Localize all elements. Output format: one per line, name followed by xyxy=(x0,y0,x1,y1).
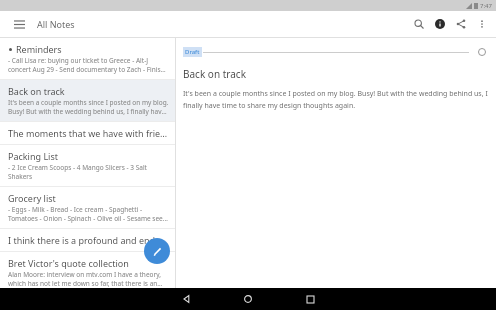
button[interactable]: Back on track xyxy=(0,80,175,121)
button[interactable]: Reminders xyxy=(0,38,175,79)
button[interactable]: New note xyxy=(144,238,170,264)
button[interactable]: Note info xyxy=(429,11,450,37)
staticText: The moments that we have with friends an… xyxy=(8,127,169,139)
staticText: Back on track xyxy=(8,85,65,97)
staticText: Draft xyxy=(185,48,200,56)
button[interactable]: Open navigation menu xyxy=(9,14,29,34)
staticText: Reminders xyxy=(16,43,62,55)
staticText: - 2 Ice Cream Scoops - 4 Mango Slicers -… xyxy=(8,163,169,181)
button[interactable]: I think there is a profound and enduring… xyxy=(0,229,175,251)
button[interactable]: Draft xyxy=(185,48,200,56)
staticText: I think there is a profound and enduring… xyxy=(8,234,169,246)
button[interactable]: Note color xyxy=(475,45,489,59)
button[interactable]: Search xyxy=(408,11,429,37)
staticText: Back on track xyxy=(183,67,246,81)
staticText: - Call Lisa re: buying our ticket to Gre… xyxy=(8,56,169,74)
button[interactable]: Packing List xyxy=(0,145,175,186)
button[interactable]: Recent apps xyxy=(290,288,330,310)
staticText: Bret Victor's quote collection xyxy=(8,257,129,269)
button[interactable]: Home xyxy=(228,288,268,310)
staticText: 7:47 xyxy=(480,2,492,10)
button[interactable]: The moments that we have with friends an… xyxy=(0,122,175,144)
staticText: Alan Moore: interview on mtv.com I have … xyxy=(8,270,169,288)
staticText: Packing List xyxy=(8,150,58,162)
button[interactable]: Bret Victor's quote collection xyxy=(0,252,175,288)
staticText: It's been a couple months since I posted… xyxy=(8,98,169,116)
button[interactable]: Back xyxy=(166,288,206,310)
button[interactable]: Share xyxy=(450,11,471,37)
staticText: It's been a couple months since I posted… xyxy=(183,89,489,110)
staticText: All Notes xyxy=(37,18,75,30)
button[interactable]: Grocery list xyxy=(0,187,175,228)
button[interactable]: More options xyxy=(471,11,492,37)
staticText: Grocery list xyxy=(8,192,56,204)
staticText: - Eggs - Milk - Bread - Ice cream - Spag… xyxy=(8,205,169,223)
